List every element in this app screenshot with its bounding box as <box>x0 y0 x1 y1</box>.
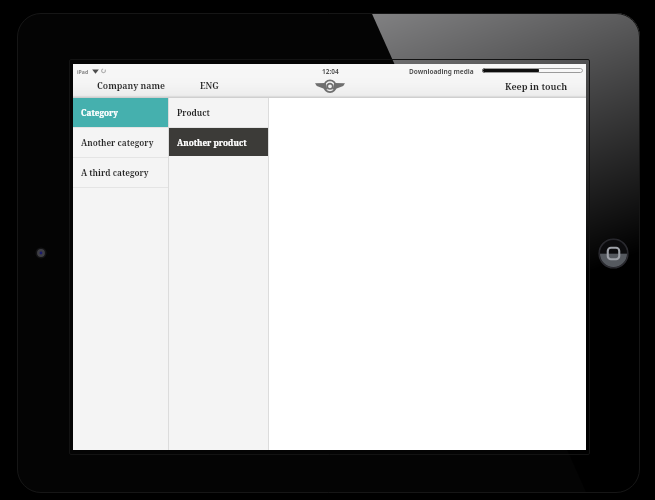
staticText: ENG <box>200 80 219 92</box>
staticText: Keep in touch <box>505 80 568 92</box>
staticText: iPad <box>77 68 89 74</box>
staticText: Category <box>81 107 119 118</box>
staticText: Another category <box>81 137 154 148</box>
button[interactable]: Home <box>598 238 629 269</box>
staticText: Product <box>177 107 210 118</box>
button[interactable]: Another product <box>169 128 268 156</box>
button[interactable]: Another category <box>73 128 168 157</box>
button[interactable]: Keep in touch <box>499 75 574 96</box>
button[interactable]: Category <box>73 98 168 127</box>
staticText: 12:04 <box>322 67 339 76</box>
button[interactable]: Product <box>169 98 268 127</box>
button[interactable]: ENG <box>194 75 225 96</box>
staticText: A third category <box>81 167 149 178</box>
staticText: Another product <box>177 137 247 148</box>
button[interactable]: A third category <box>73 158 168 187</box>
button[interactable]: Company logo <box>315 79 345 93</box>
staticText: Company name <box>97 80 165 92</box>
staticText: Downloading media <box>409 67 474 76</box>
button[interactable]: Company name <box>91 75 171 96</box>
